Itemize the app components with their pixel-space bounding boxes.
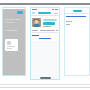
button[interactable]: Header — [73, 10, 82, 12]
button[interactable]: Tab — [38, 12, 51, 14]
button[interactable]: Open panel — [17, 11, 23, 14]
button[interactable] — [5, 39, 18, 51]
